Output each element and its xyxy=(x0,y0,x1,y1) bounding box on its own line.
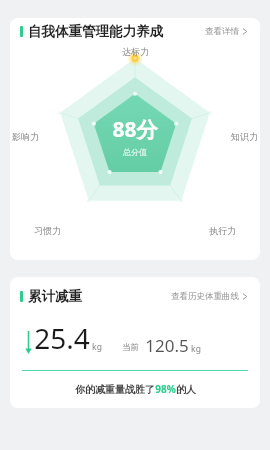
staticText: 当前 xyxy=(122,342,139,353)
staticText: kg xyxy=(191,343,201,355)
button[interactable]: 查看详情 xyxy=(203,23,250,40)
staticText: 查看详情 xyxy=(205,26,239,37)
staticText: 执行力 xyxy=(209,225,236,236)
staticText: 自我体重管理能力养成 xyxy=(28,23,163,40)
staticText: 达标力 xyxy=(122,46,149,57)
other: 减少 xyxy=(24,331,33,354)
staticText: 总分值 xyxy=(123,147,147,157)
staticText: 88分 xyxy=(112,115,158,144)
staticText: 你的减重量战胜了 xyxy=(75,383,155,396)
button[interactable]: 查看历史体重曲线 xyxy=(169,288,250,305)
staticText: 知识力 xyxy=(231,131,258,142)
staticText: kg xyxy=(92,341,102,353)
staticText: 影响力 xyxy=(12,131,39,142)
staticText: 120.5 xyxy=(145,334,189,357)
staticText: 累计减重 xyxy=(28,288,82,305)
other: 查看详情 xyxy=(242,27,248,36)
other: 查看历史体重曲线 xyxy=(242,292,248,301)
staticText: 习惯力 xyxy=(34,225,61,236)
staticText: 98% xyxy=(155,382,176,396)
staticText: 查看历史体重曲线 xyxy=(171,291,239,302)
staticText: 25.4 xyxy=(34,319,90,357)
staticText: 的人 xyxy=(176,383,196,396)
